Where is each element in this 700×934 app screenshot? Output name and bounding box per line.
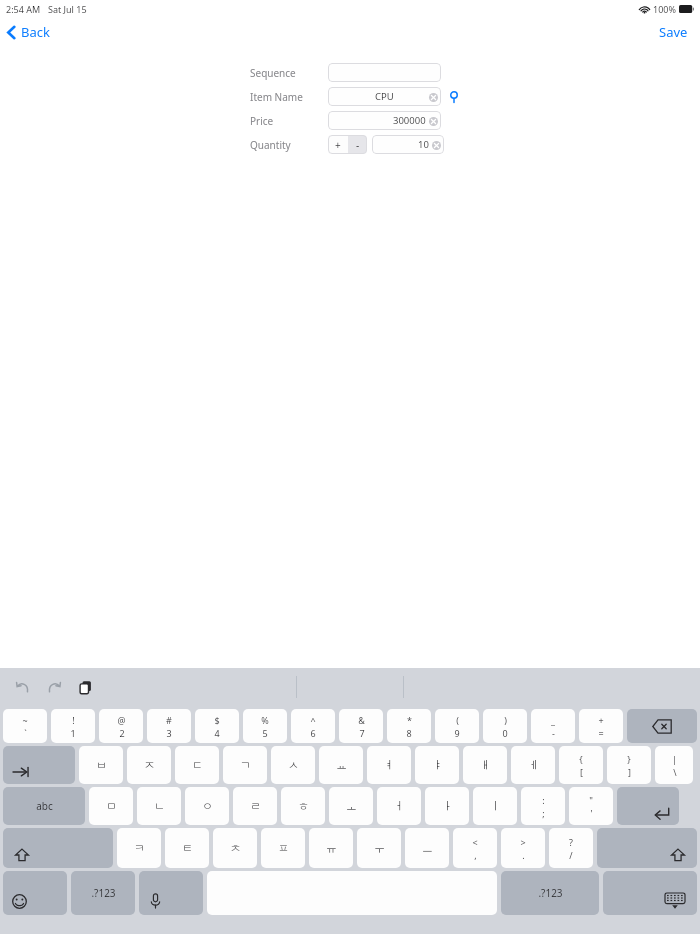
button[interactable] bbox=[328, 63, 441, 82]
button[interactable]: ㄱ bbox=[223, 746, 267, 784]
button[interactable]: + bbox=[579, 709, 623, 743]
staticText: + bbox=[598, 714, 604, 726]
button[interactable]: > bbox=[501, 828, 545, 868]
staticText: @ bbox=[117, 714, 126, 726]
staticText: 0 bbox=[502, 727, 508, 739]
staticText: } bbox=[627, 753, 631, 765]
button[interactable]: ㅣ bbox=[473, 787, 517, 825]
button[interactable]: ㅊ bbox=[213, 828, 257, 868]
button[interactable]: % bbox=[243, 709, 287, 743]
staticText: 1 bbox=[70, 727, 76, 739]
staticText: = bbox=[598, 727, 604, 739]
button[interactable]: ㅗ bbox=[329, 787, 373, 825]
button[interactable]: ㄴ bbox=[137, 787, 181, 825]
button[interactable]: $ bbox=[195, 709, 239, 743]
staticText: ㅁ bbox=[106, 799, 117, 813]
staticText: 8 bbox=[406, 727, 412, 739]
button[interactable]: ~ bbox=[3, 709, 47, 743]
button[interactable]: Backspace bbox=[627, 709, 697, 743]
button[interactable]: Paste bbox=[74, 676, 96, 698]
button[interactable]: ㅋ bbox=[117, 828, 161, 868]
staticText: ㅔ bbox=[528, 758, 539, 772]
button[interactable]: Clear bbox=[428, 116, 438, 126]
button[interactable]: ㅕ bbox=[367, 746, 411, 784]
button[interactable]: } bbox=[607, 746, 651, 784]
staticText: . bbox=[522, 849, 525, 861]
button[interactable]: ㅍ bbox=[261, 828, 305, 868]
button[interactable]: ㅅ bbox=[271, 746, 315, 784]
staticText: ㅐ bbox=[480, 758, 491, 772]
button[interactable]: 300000 bbox=[328, 111, 441, 130]
staticText: 100% bbox=[653, 3, 676, 15]
button[interactable]: .?123 bbox=[501, 871, 599, 915]
button[interactable]: _ bbox=[531, 709, 575, 743]
button[interactable]: & bbox=[339, 709, 383, 743]
staticText: ㄷ bbox=[192, 758, 203, 772]
button[interactable]: Clear bbox=[428, 92, 438, 102]
staticText: % bbox=[261, 714, 269, 726]
staticText: Price bbox=[250, 114, 274, 128]
button[interactable]: ㄷ bbox=[175, 746, 219, 784]
button[interactable]: ) bbox=[483, 709, 527, 743]
staticText: ㅕ bbox=[384, 758, 395, 772]
staticText: ? bbox=[569, 836, 573, 848]
button[interactable]: ㅁ bbox=[89, 787, 133, 825]
staticText: ^ bbox=[310, 714, 316, 726]
button[interactable]: ㅐ bbox=[463, 746, 507, 784]
staticText: ㅠ bbox=[326, 841, 337, 855]
staticText: , bbox=[474, 849, 477, 861]
button[interactable]: ㅌ bbox=[165, 828, 209, 868]
staticText: & bbox=[358, 714, 365, 726]
button[interactable]: ㅜ bbox=[357, 828, 401, 868]
staticText: ㅌ bbox=[182, 841, 193, 855]
button[interactable]: Clear bbox=[431, 140, 441, 150]
button[interactable]: " bbox=[569, 787, 613, 825]
button[interactable]: ? bbox=[549, 828, 593, 868]
button[interactable]: Hide keyboard bbox=[603, 871, 697, 915]
button[interactable]: Shift bbox=[3, 828, 113, 868]
button[interactable]: Shift bbox=[597, 828, 697, 868]
button[interactable]: CPU bbox=[328, 87, 441, 106]
button[interactable]: Tab bbox=[3, 746, 75, 784]
button[interactable]: ㅂ bbox=[79, 746, 123, 784]
button[interactable]: Dictation bbox=[139, 871, 203, 915]
button[interactable]: @ bbox=[99, 709, 143, 743]
button[interactable]: # bbox=[147, 709, 191, 743]
staticText: 2:54 AM bbox=[6, 3, 41, 15]
staticText: ㅑ bbox=[432, 758, 443, 772]
button[interactable]: ㅎ bbox=[281, 787, 325, 825]
button[interactable]: .?123 bbox=[71, 871, 135, 915]
button[interactable]: Redo bbox=[43, 676, 65, 698]
button[interactable]: : bbox=[521, 787, 565, 825]
button[interactable]: Emoji bbox=[3, 871, 67, 915]
button[interactable]: ㅑ bbox=[415, 746, 459, 784]
button[interactable]: ( bbox=[435, 709, 479, 743]
button[interactable]: Save bbox=[647, 19, 700, 45]
button[interactable]: ㄹ bbox=[233, 787, 277, 825]
button[interactable]: | bbox=[655, 746, 693, 784]
button[interactable]: ㅔ bbox=[511, 746, 555, 784]
button[interactable]: Increase quantity bbox=[328, 135, 348, 154]
button[interactable]: { bbox=[559, 746, 603, 784]
button[interactable]: Decrease quantity bbox=[348, 135, 367, 154]
button[interactable]: Return bbox=[617, 787, 679, 825]
button[interactable]: Search item bbox=[446, 89, 462, 105]
button[interactable]: ^ bbox=[291, 709, 335, 743]
button[interactable]: ㅏ bbox=[425, 787, 469, 825]
button[interactable]: ㅡ bbox=[405, 828, 449, 868]
button[interactable]: < bbox=[453, 828, 497, 868]
staticText: 10 bbox=[418, 138, 429, 151]
button[interactable]: 10 bbox=[372, 135, 444, 154]
button[interactable]: ㅇ bbox=[185, 787, 229, 825]
button[interactable]: ㅓ bbox=[377, 787, 421, 825]
button[interactable]: Back bbox=[0, 19, 60, 45]
button[interactable]: ㅠ bbox=[309, 828, 353, 868]
button[interactable]: Undo bbox=[12, 676, 34, 698]
button[interactable]: ! bbox=[51, 709, 95, 743]
button[interactable]: ㅈ bbox=[127, 746, 171, 784]
button[interactable]: abc bbox=[3, 787, 85, 825]
staticText: < bbox=[472, 836, 478, 848]
button[interactable]: ㅛ bbox=[319, 746, 363, 784]
button[interactable]: * bbox=[387, 709, 431, 743]
